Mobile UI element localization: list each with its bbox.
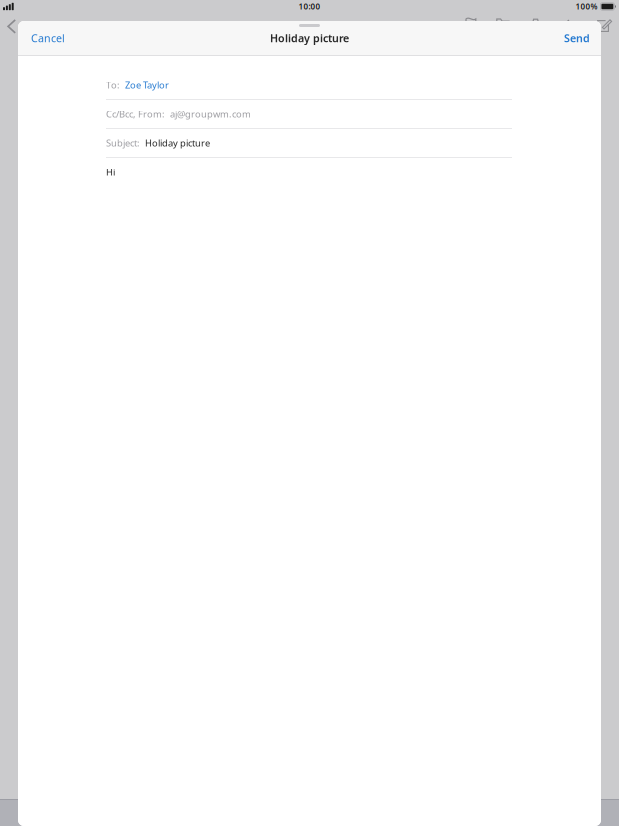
staticText: Send bbox=[564, 31, 590, 45]
staticText: aj@groupwm.com bbox=[170, 108, 251, 120]
button[interactable]: To: bbox=[106, 71, 512, 99]
button[interactable]: Subject: bbox=[106, 129, 512, 157]
staticText: Holiday picture bbox=[145, 137, 210, 149]
button[interactable]: Hi bbox=[106, 158, 512, 186]
staticText: 100% bbox=[575, 1, 597, 12]
staticText: Holiday picture bbox=[270, 31, 349, 45]
button[interactable]: Cc/Bcc, From: bbox=[106, 100, 512, 128]
staticText: To: bbox=[106, 79, 120, 91]
button[interactable]: Compose bbox=[597, 18, 615, 36]
staticText: 10:00 bbox=[298, 1, 320, 12]
button[interactable]: Send bbox=[554, 21, 601, 55]
staticText: Cc/Bcc, From: bbox=[106, 108, 165, 120]
staticText: Cancel bbox=[31, 31, 65, 45]
staticText: Subject: bbox=[106, 137, 140, 149]
staticText: Zoe Taylor bbox=[125, 79, 169, 91]
button[interactable]: Back bbox=[0, 18, 20, 36]
button[interactable]: Cancel bbox=[18, 21, 75, 55]
staticText: Hi bbox=[106, 166, 115, 178]
